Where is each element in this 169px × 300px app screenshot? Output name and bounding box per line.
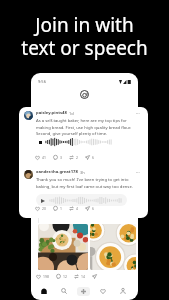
- other: Share: [85, 206, 90, 211]
- other: Reply: [53, 155, 58, 160]
- button[interactable]: Like: [35, 155, 53, 160]
- button[interactable]: Like: [35, 206, 53, 211]
- staticText: 20: [42, 206, 46, 211]
- button[interactable]: More options: [136, 110, 140, 116]
- button[interactable]: Repost: [74, 274, 92, 279]
- button[interactable]: Profile picture: [24, 170, 33, 179]
- button[interactable]: Like: [36, 274, 56, 279]
- staticText: As a self-taught baker, here are my top …: [36, 118, 139, 136]
- staticText: 3: [60, 155, 62, 160]
- button[interactable]: Photo: [90, 224, 136, 270]
- button[interactable]: Profile picture: [24, 111, 33, 120]
- other: Repost: [69, 206, 74, 211]
- button[interactable]: Share: [85, 206, 101, 211]
- button[interactable]: Play voice message: [36, 194, 127, 206]
- other: Threads: [80, 90, 89, 99]
- other: Reply: [56, 274, 61, 279]
- button[interactable]: Share: [92, 274, 104, 279]
- button[interactable]: Share: [85, 155, 101, 160]
- button[interactable]: Activity: [94, 285, 111, 297]
- button[interactable]: More options: [136, 169, 140, 175]
- button[interactable]: Play audio: [39, 138, 112, 146]
- other: Like: [36, 274, 41, 279]
- staticText: 41: [42, 155, 46, 160]
- staticText: 9:56: [38, 79, 46, 84]
- staticText: xander.tha.great178: [36, 169, 78, 175]
- staticText: 1: [60, 206, 62, 211]
- button[interactable]: Repost: [69, 206, 85, 211]
- button[interactable]: Reply: [56, 274, 74, 279]
- other: Reply: [53, 206, 58, 211]
- staticText: 12: [63, 274, 67, 279]
- button[interactable]: Reply: [53, 206, 69, 211]
- button[interactable]: Search: [55, 285, 72, 297]
- staticText: 3h: [80, 170, 85, 175]
- button[interactable]: Home: [35, 285, 52, 297]
- staticText: 1d: [69, 111, 74, 116]
- staticText: 198: [43, 274, 49, 279]
- staticText: ···: [136, 169, 140, 175]
- staticText: Join in with text or speech: [21, 12, 148, 61]
- other: Like: [35, 155, 40, 160]
- staticText: 2: [76, 155, 78, 160]
- staticText: paisley.pints48: [36, 110, 67, 116]
- other: Repost: [74, 274, 79, 279]
- staticText: 4: [76, 206, 78, 211]
- staticText: 6: [92, 155, 94, 160]
- staticText: Thank you so much! I've been trying to g…: [36, 177, 139, 189]
- other: Share: [85, 155, 90, 160]
- staticText: 14: [81, 274, 85, 279]
- button[interactable]: Create: [75, 285, 92, 297]
- button[interactable]: Profile: [114, 285, 131, 297]
- other: Repost: [69, 155, 74, 160]
- staticText: ···: [136, 110, 140, 116]
- staticText: 6: [92, 206, 94, 211]
- button[interactable]: Repost: [69, 155, 85, 160]
- other: Like: [35, 206, 40, 211]
- other: Share: [92, 274, 97, 279]
- button[interactable]: Reply: [53, 155, 69, 160]
- button[interactable]: Photo: [38, 224, 88, 270]
